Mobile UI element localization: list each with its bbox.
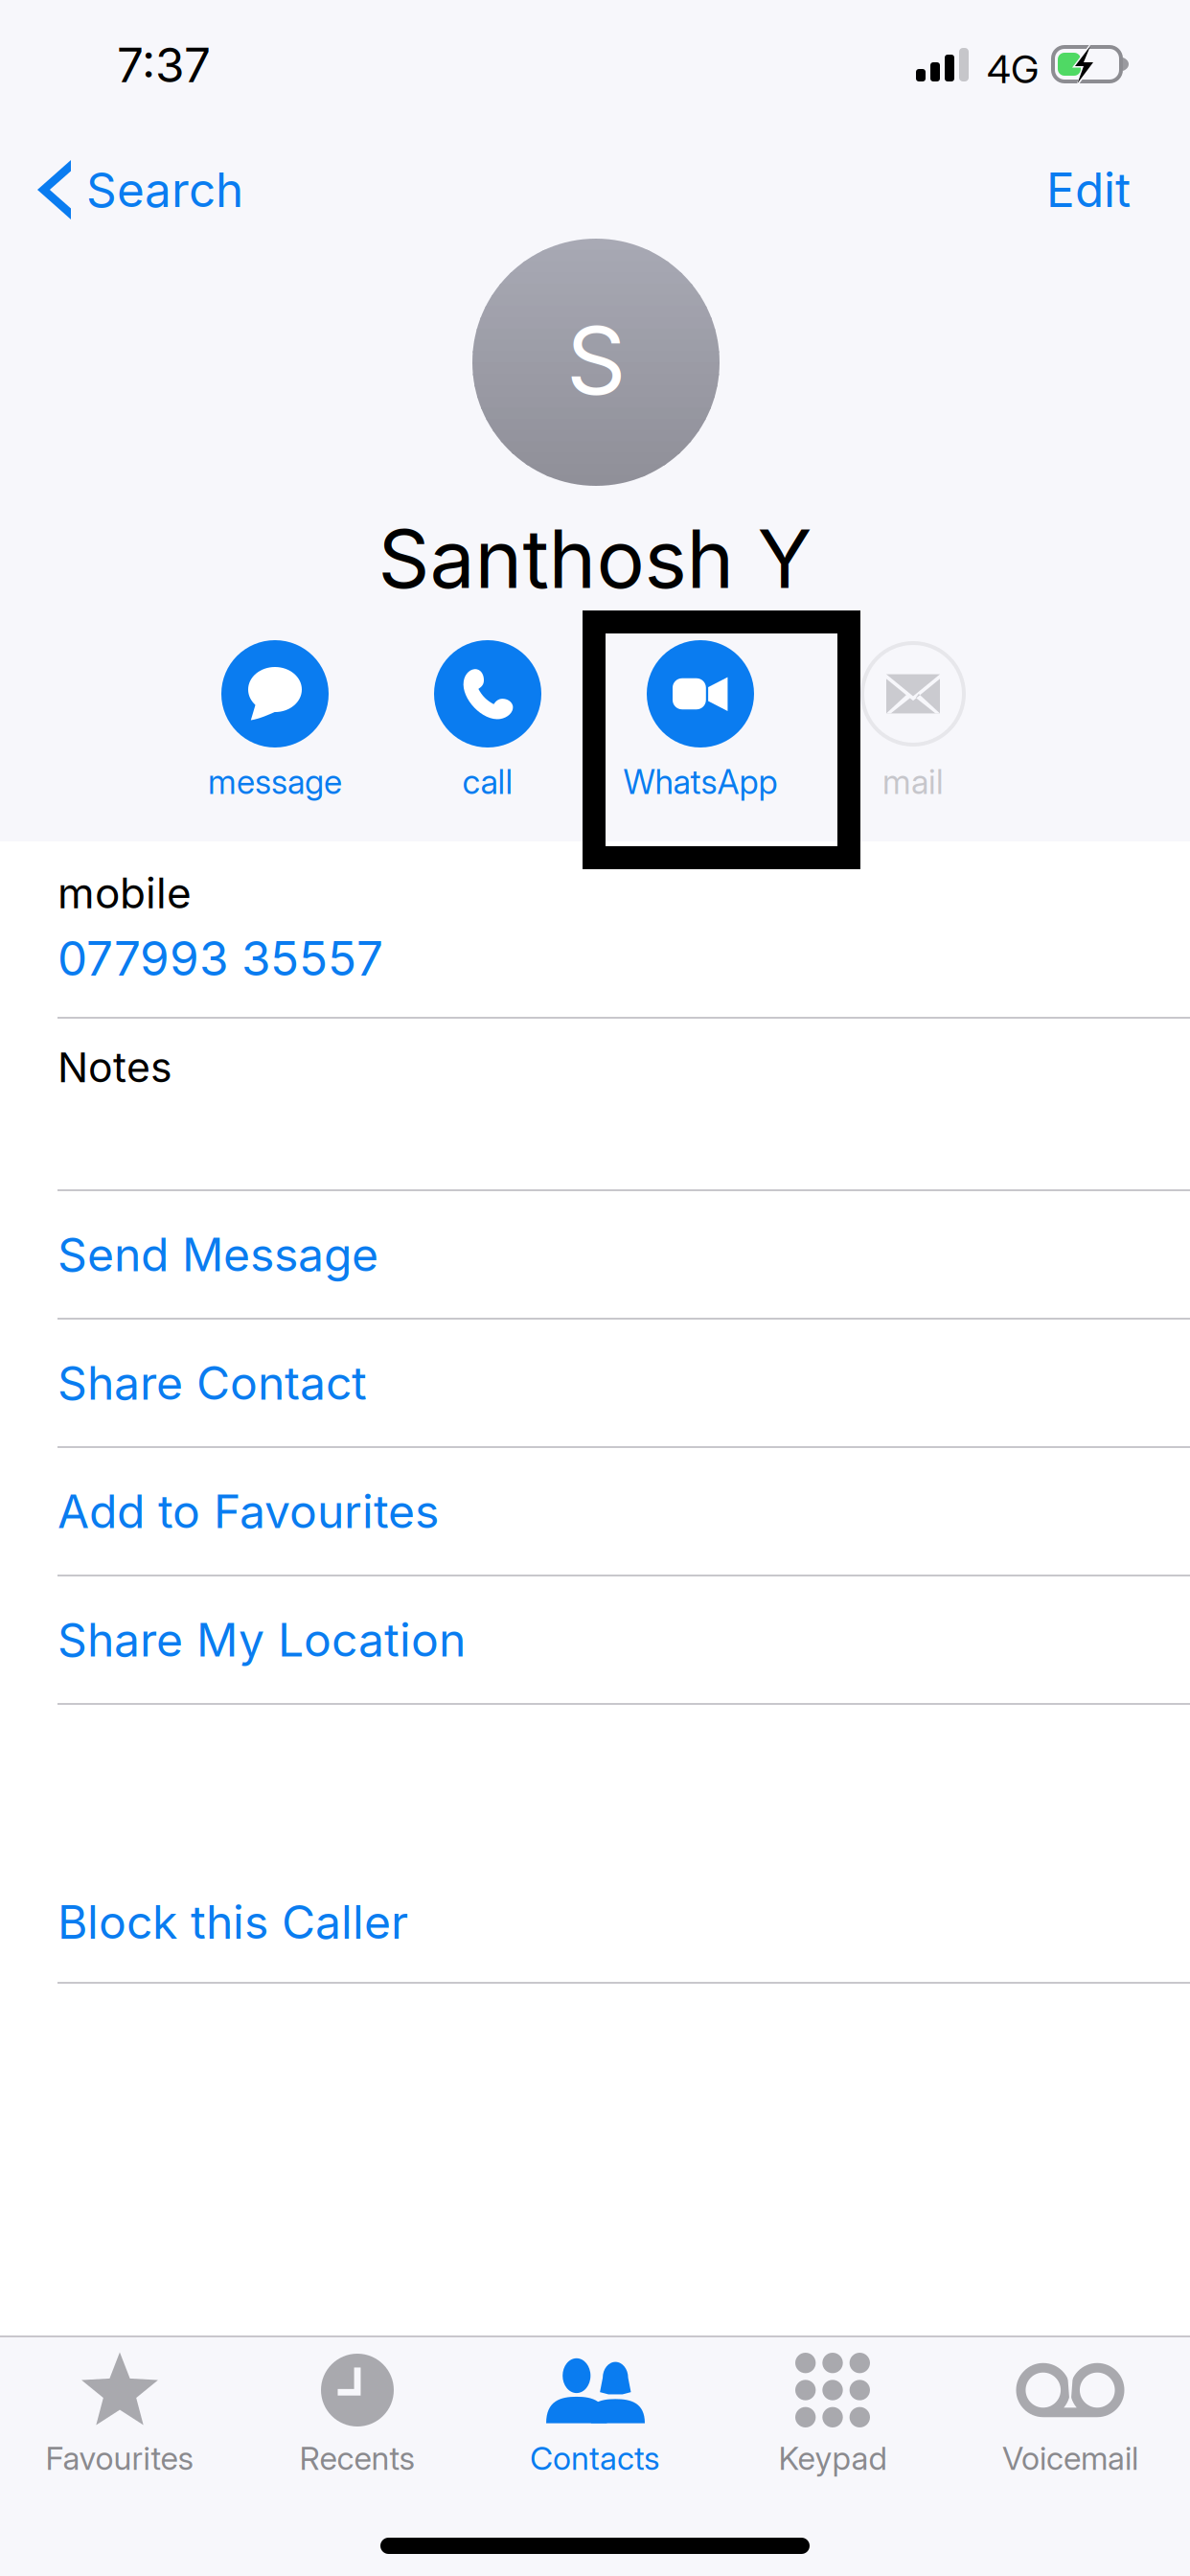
staticText: 7:37 (117, 36, 211, 94)
button[interactable]: Recents (239, 2349, 476, 2502)
button[interactable]: Keypad (714, 2349, 951, 2502)
staticText: Send Message (57, 1227, 378, 1282)
staticText: Voicemail (1002, 2439, 1138, 2478)
button[interactable]: WhatsApp (594, 640, 807, 822)
staticText: message (208, 762, 342, 802)
staticText: Search (86, 161, 243, 218)
button[interactable]: Block this Caller (0, 1855, 1190, 1982)
button[interactable]: Add to Favourites (0, 1448, 1190, 1575)
staticText: Share Contact (57, 1355, 367, 1411)
staticText: S (566, 304, 626, 417)
staticText: Share My Location (57, 1612, 466, 1668)
staticText: Contacts (530, 2439, 660, 2478)
button[interactable]: Search (0, 146, 266, 234)
button[interactable]: Contacts (476, 2349, 714, 2502)
staticText: Block this Caller (57, 1894, 408, 1950)
button[interactable]: Edit (1000, 146, 1177, 234)
button[interactable]: Share Contact (0, 1320, 1190, 1446)
staticText: WhatsApp (623, 762, 778, 802)
button[interactable]: call (381, 640, 594, 822)
staticText: Add to Favourites (57, 1483, 439, 1539)
button[interactable]: mobile (0, 841, 1190, 1017)
staticText: call (462, 762, 513, 802)
staticText: Santhosh Y (378, 510, 812, 607)
button[interactable]: Voicemail (951, 2349, 1189, 2502)
button[interactable]: mail (807, 640, 1019, 822)
staticText: mobile (57, 867, 192, 918)
staticText: Notes (57, 1043, 172, 1092)
staticText: Recents (299, 2439, 415, 2478)
staticText: 4G (987, 46, 1039, 92)
staticText: Favourites (46, 2439, 194, 2478)
button[interactable]: Send Message (0, 1191, 1190, 1318)
button[interactable]: message (169, 640, 381, 822)
staticText: Keypad (778, 2439, 887, 2478)
button[interactable]: Favourites (1, 2349, 239, 2502)
button[interactable]: Share My Location (0, 1576, 1190, 1703)
staticText: Edit (1046, 161, 1131, 218)
staticText: mail (882, 762, 944, 802)
staticText: 077993 35557 (57, 930, 383, 987)
